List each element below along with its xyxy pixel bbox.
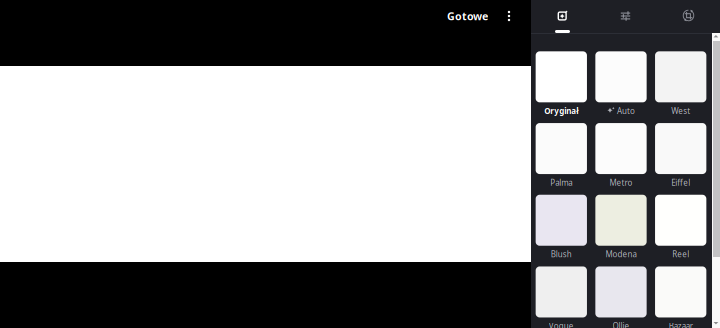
button[interactable]: Eiffel	[655, 124, 715, 195]
staticText: Oryginał	[544, 105, 578, 116]
button[interactable]: Metro	[595, 124, 655, 195]
button[interactable]: Bazaar	[655, 267, 715, 328]
button[interactable]: Auto	[595, 52, 655, 124]
staticText: Ollie	[612, 321, 629, 328]
button[interactable]: Modena	[595, 195, 655, 267]
staticText: Eiffel	[671, 177, 690, 188]
button[interactable]: Gotowe	[437, 1, 490, 31]
button[interactable]: Blush	[536, 195, 595, 267]
staticText: Blush	[551, 249, 572, 259]
button[interactable]: Crop and rotate	[657, 0, 720, 33]
staticText: Bazaar	[669, 321, 693, 328]
staticText: Modena	[605, 249, 636, 259]
button[interactable]: Palma	[536, 124, 595, 195]
staticText: Vogue	[549, 321, 574, 328]
button[interactable]: Adjustments	[594, 0, 657, 33]
staticText: Palma	[550, 177, 572, 188]
staticText: West	[671, 105, 690, 116]
staticText: Gotowe	[447, 9, 488, 23]
button[interactable]: Filters	[531, 0, 594, 33]
button[interactable]: Reel	[655, 195, 715, 267]
button[interactable]: West	[655, 52, 715, 124]
button[interactable]: Ollie	[595, 267, 655, 328]
button[interactable]: Vogue	[536, 267, 595, 328]
button[interactable]: Oryginał	[536, 52, 595, 124]
staticText: Reel	[672, 249, 689, 259]
staticText: Auto	[617, 105, 635, 116]
staticText: Metro	[609, 177, 632, 188]
button[interactable]: More options	[496, 1, 522, 31]
